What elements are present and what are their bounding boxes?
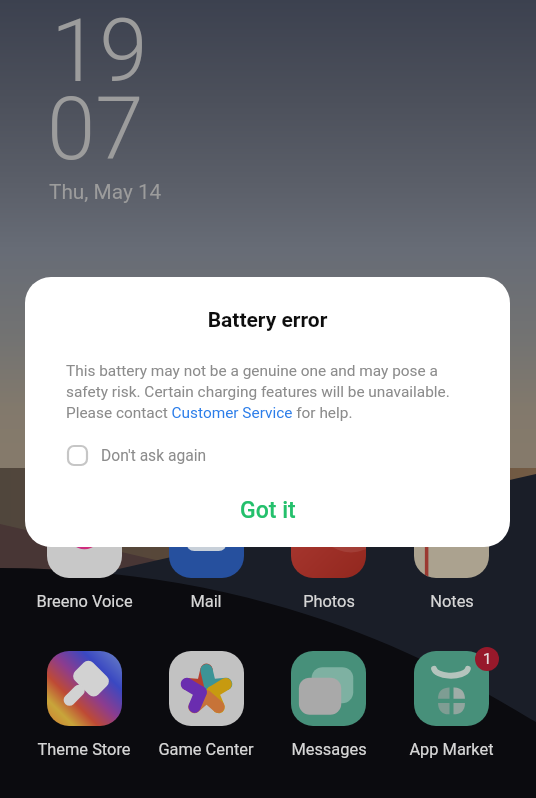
- button[interactable]: Breeno Voice: [23, 503, 145, 611]
- staticText: Theme Store: [37, 740, 131, 759]
- staticText: App Market: [409, 740, 494, 759]
- staticText: Don't ask again: [101, 447, 207, 465]
- staticText: This battery may not be a genuine one an…: [66, 362, 457, 422]
- staticText: Notes: [430, 592, 474, 611]
- staticText: Photos: [303, 592, 355, 611]
- other: App Market: [414, 651, 489, 726]
- button[interactable]: Photos: [267, 503, 390, 611]
- staticText: 1: [483, 650, 492, 668]
- staticText: Thu, May 14: [49, 180, 162, 204]
- staticText: Breeno Voice: [36, 592, 133, 611]
- other: Theme Store: [47, 651, 122, 726]
- other: Breeno Voice: [47, 503, 122, 578]
- button[interactable]: Don't ask again: [68, 446, 207, 465]
- staticText: Game Center: [158, 740, 254, 759]
- other: Messages: [291, 651, 366, 726]
- staticText: Got it: [240, 497, 296, 524]
- staticText: 19: [51, 0, 148, 102]
- other: Notes: [414, 503, 489, 578]
- staticText: 07: [47, 78, 144, 180]
- button[interactable]: Got it: [25, 486, 510, 534]
- button[interactable]: App Market: [390, 651, 513, 759]
- staticText: Messages: [291, 740, 367, 759]
- button[interactable]: Notes: [390, 503, 513, 611]
- other: Game Center: [169, 651, 244, 726]
- button[interactable]: Game Center: [145, 651, 267, 759]
- button[interactable]: Theme Store: [23, 651, 145, 759]
- staticText: Mail: [190, 592, 222, 611]
- staticText: Battery error: [25, 308, 510, 333]
- button[interactable]: Messages: [267, 651, 390, 759]
- other: Photos: [291, 503, 366, 578]
- other: Mail: [169, 503, 244, 578]
- button[interactable]: Mail: [145, 503, 267, 611]
